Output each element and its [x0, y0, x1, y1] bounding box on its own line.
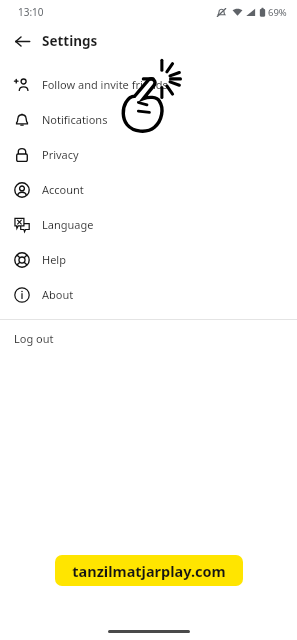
button[interactable]: Help [0, 242, 297, 277]
button[interactable]: Notifications [0, 102, 297, 137]
button[interactable]: Follow and invite friends [0, 67, 297, 102]
staticText: Log out [14, 331, 54, 346]
staticText: Notifications [42, 112, 108, 127]
button[interactable]: About [0, 277, 297, 312]
staticText: Privacy [42, 147, 79, 162]
button[interactable]: Language [0, 207, 297, 242]
staticText: tanzilmatjarplay.com [72, 561, 226, 581]
staticText: About [42, 287, 74, 302]
staticText: Help [42, 252, 66, 267]
staticText: Settings [42, 32, 98, 50]
staticText: Follow and invite friends [42, 77, 168, 92]
button[interactable]: Back [8, 27, 36, 55]
staticText: Language [42, 217, 94, 232]
staticText: 69% [268, 6, 287, 19]
staticText: 13:10 [18, 5, 44, 19]
button[interactable]: Account [0, 172, 297, 207]
button[interactable]: Log out [0, 320, 297, 356]
button[interactable]: Privacy [0, 137, 297, 172]
staticText: Account [42, 182, 84, 197]
